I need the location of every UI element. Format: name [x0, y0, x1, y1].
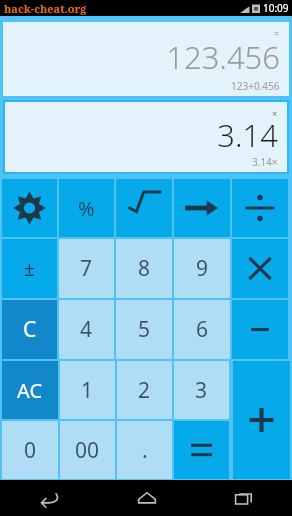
button[interactable]: Divide: [232, 179, 288, 237]
staticText: 4: [80, 315, 93, 344]
button[interactable]: 8: [116, 239, 172, 298]
button[interactable]: 0: [2, 421, 58, 479]
button[interactable]: 9: [174, 239, 230, 298]
staticText: ±: [24, 256, 35, 282]
button[interactable]: %: [59, 179, 114, 237]
button[interactable]: 3: [174, 361, 229, 419]
button[interactable]: Equals: [174, 421, 229, 479]
staticText: C: [23, 315, 37, 344]
button[interactable]: Plus: [233, 361, 290, 479]
staticText: 0: [24, 436, 37, 465]
button[interactable]: 6: [174, 300, 230, 359]
staticText: 6: [196, 315, 209, 344]
staticText: 2: [138, 376, 151, 405]
button[interactable]: Backspace: [174, 179, 230, 237]
button[interactable]: Recents: [195, 480, 292, 516]
button[interactable]: Home: [98, 480, 195, 516]
staticText: 9: [196, 254, 209, 283]
button[interactable]: ±: [2, 239, 57, 298]
button[interactable]: Back: [0, 480, 98, 516]
staticText: 123+0.456: [231, 79, 280, 93]
staticText: 10:09: [263, 1, 289, 15]
staticText: %: [78, 195, 95, 222]
staticText: 3.14×: [252, 155, 278, 169]
staticText: 00: [75, 436, 100, 465]
staticText: 7: [80, 254, 93, 283]
button[interactable]: Square root: [116, 179, 172, 237]
staticText: 123.456: [166, 36, 280, 78]
button[interactable]: 2: [117, 361, 172, 419]
staticText: 3.14: [217, 114, 278, 156]
button[interactable]: =: [3, 22, 289, 96]
button[interactable]: 1: [60, 361, 115, 419]
button[interactable]: 7: [59, 239, 114, 298]
staticText: hack-cheat.org: [4, 1, 87, 16]
button[interactable]: 00: [60, 421, 115, 479]
staticText: .: [142, 436, 148, 465]
staticText: =: [274, 27, 280, 39]
button[interactable]: 4: [59, 300, 114, 359]
staticText: 1: [81, 376, 94, 405]
button[interactable]: Multiply: [232, 239, 288, 298]
staticText: AC: [17, 377, 43, 404]
button[interactable]: C: [2, 300, 57, 359]
staticText: 5: [138, 315, 151, 344]
button[interactable]: Settings: [2, 179, 57, 237]
staticText: 3: [195, 376, 208, 405]
button[interactable]: Minus: [232, 300, 288, 359]
staticText: 8: [138, 254, 151, 283]
button[interactable]: .: [117, 421, 172, 479]
button[interactable]: AC: [2, 361, 58, 419]
button[interactable]: ×: [5, 102, 287, 172]
staticText: ×: [272, 107, 278, 119]
button[interactable]: 5: [116, 300, 172, 359]
